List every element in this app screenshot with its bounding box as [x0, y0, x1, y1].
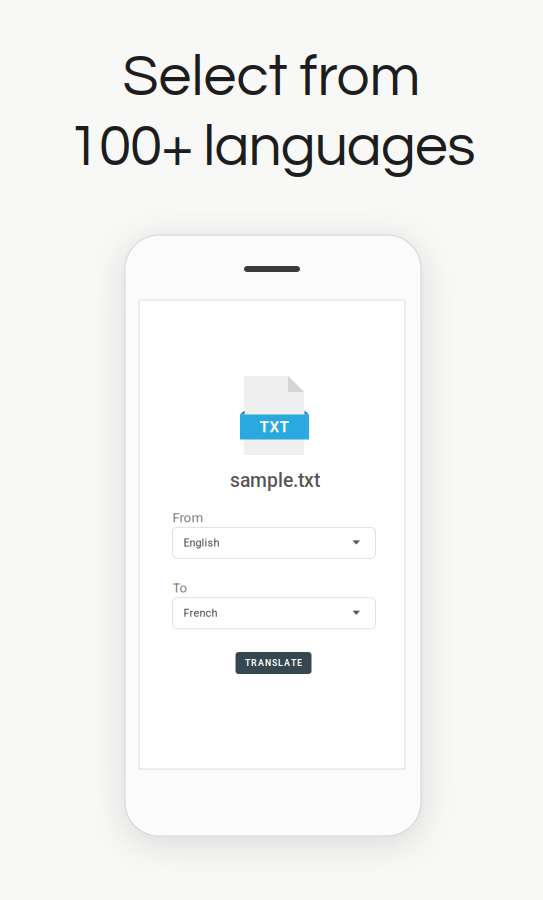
staticText: French [183, 607, 217, 619]
staticText: To [172, 580, 187, 596]
button[interactable]: T R A N S L A T E [235, 652, 311, 674]
staticText: TXT [259, 418, 289, 436]
staticText: sample.txt [230, 469, 320, 492]
staticText: T R A N S L A T E [245, 658, 302, 668]
button[interactable]: French [172, 598, 375, 629]
staticText: English [183, 537, 219, 549]
button[interactable]: English [172, 527, 375, 558]
staticText: 100+ languages [68, 117, 475, 177]
staticText: From [172, 510, 203, 525]
staticText: Select from [122, 47, 420, 107]
